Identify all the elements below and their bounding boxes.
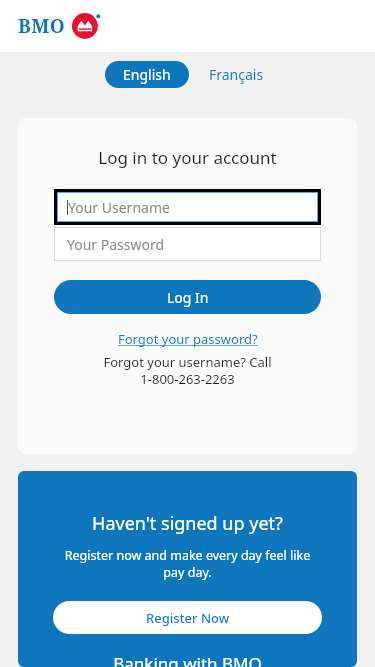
staticText: Français bbox=[209, 65, 264, 84]
button[interactable]: English bbox=[105, 61, 189, 88]
button[interactable]: Register Now bbox=[53, 601, 322, 634]
button[interactable]: Your Username bbox=[57, 192, 318, 222]
button[interactable]: Log In bbox=[54, 280, 321, 314]
staticText: Log in to your account bbox=[98, 146, 277, 169]
staticText: Forgot your username? Call 1-800-263-226… bbox=[54, 353, 321, 388]
staticText: Register now and make every day feel lik… bbox=[36, 547, 339, 581]
staticText: Banking with BMO bbox=[36, 652, 339, 667]
staticText: Log In bbox=[167, 288, 209, 307]
staticText: English bbox=[123, 65, 171, 84]
button[interactable]: Forgot your password? bbox=[118, 330, 258, 348]
staticText: Haven't signed up yet? bbox=[36, 511, 339, 536]
staticText: BMO bbox=[18, 13, 66, 39]
button[interactable]: Français bbox=[203, 61, 270, 88]
staticText: Register Now bbox=[146, 609, 230, 627]
staticText: Your Password bbox=[67, 235, 165, 254]
button[interactable]: BMO home bbox=[18, 11, 104, 41]
staticText: Your Username bbox=[68, 198, 170, 217]
staticText: Forgot your password? bbox=[118, 330, 258, 348]
button[interactable]: Your Password bbox=[54, 227, 321, 261]
